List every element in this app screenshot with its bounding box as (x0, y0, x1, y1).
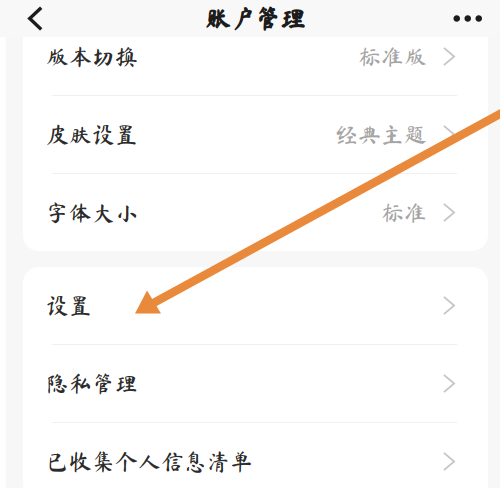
staticText: 设置 (46, 294, 92, 317)
staticText: 标准版 (358, 45, 427, 68)
staticText: 皮肤设置 (46, 123, 138, 146)
staticText: 字体大小 (46, 201, 138, 224)
button[interactable]: More options (453, 4, 500, 33)
staticText: 标准 (381, 201, 427, 224)
staticText: 隐私管理 (46, 372, 138, 395)
button[interactable]: 字体大小 (23, 174, 488, 251)
button[interactable]: 设置 (23, 267, 488, 344)
button[interactable]: 皮肤设置 (23, 96, 488, 173)
staticText: 已收集个人信息清单 (46, 450, 253, 473)
staticText: 版本切换 (46, 45, 138, 68)
staticText: 经典主题 (335, 123, 427, 146)
button[interactable]: 版本切换 (23, 18, 488, 95)
button[interactable]: Back (0, 1, 57, 36)
staticText: 账户管理 (205, 6, 305, 31)
button[interactable]: 隐私管理 (23, 345, 488, 422)
button[interactable]: 已收集个人信息清单 (23, 423, 488, 488)
